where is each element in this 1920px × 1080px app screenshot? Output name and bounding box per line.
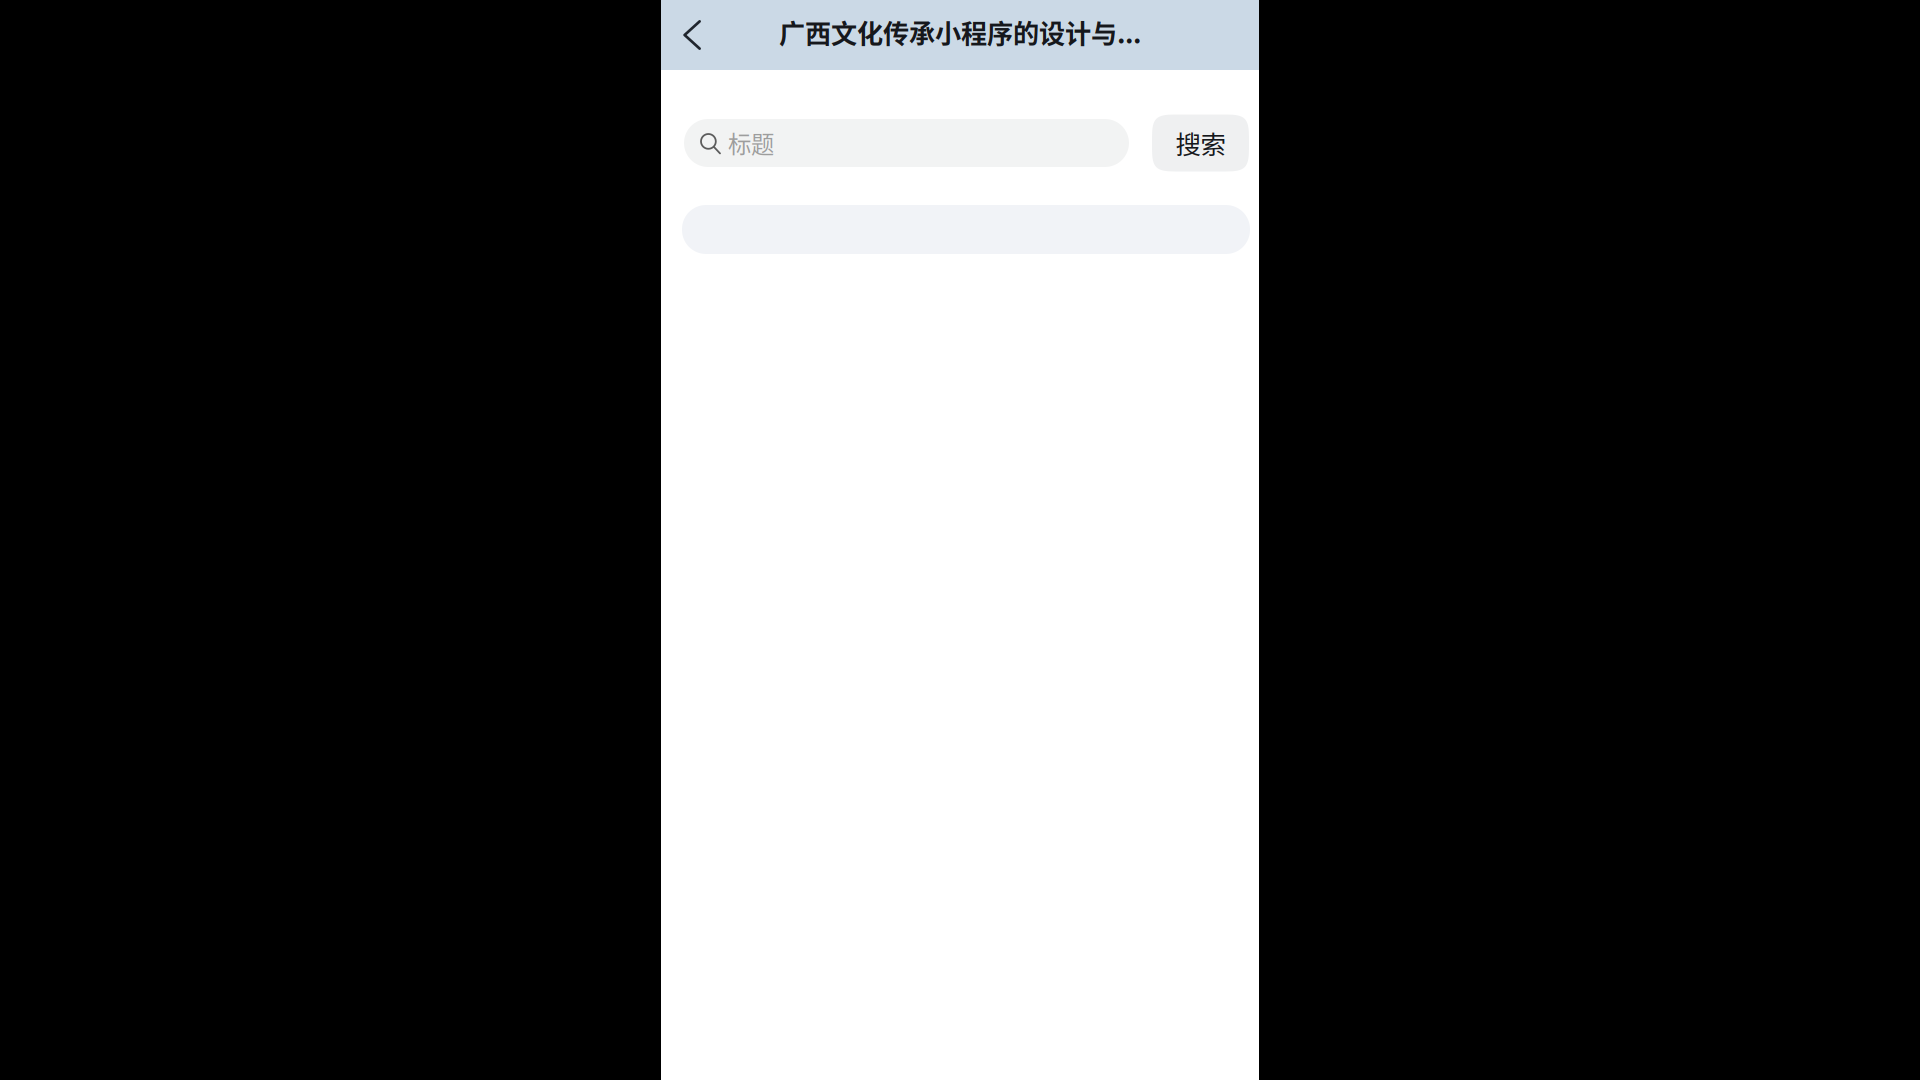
staticText: 广西文化传承小程序的设计与...	[779, 13, 1141, 51]
staticText: 搜索	[1175, 125, 1225, 161]
button[interactable]: 标题	[684, 119, 1129, 167]
staticText: 标题	[728, 126, 774, 160]
button[interactable]: 返回	[661, 0, 723, 70]
button[interactable]: 搜索	[1152, 114, 1249, 171]
